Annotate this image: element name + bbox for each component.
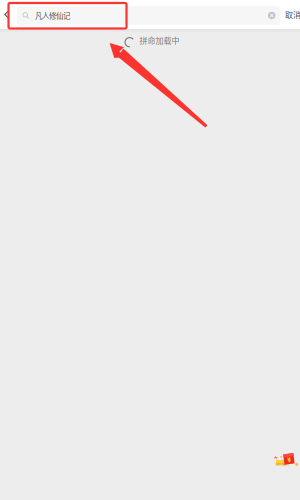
staticText: 拼命加载中 (140, 34, 180, 46)
button[interactable]: 凡人修仙记 (17, 6, 280, 25)
button[interactable]: 取消 (282, 0, 300, 29)
staticText: 取消 (285, 9, 300, 20)
staticText: 凡人修仙记 (35, 10, 70, 21)
button[interactable]: Back (1, 0, 12, 29)
button[interactable]: Red packet rewards (273, 453, 299, 469)
